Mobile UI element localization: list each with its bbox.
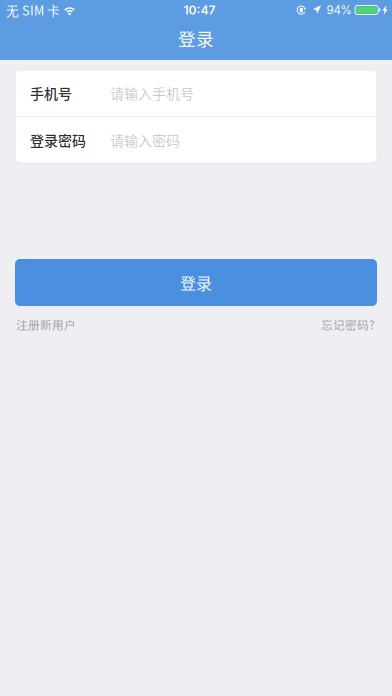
staticText: 忘记密码?	[321, 316, 375, 333]
staticText: 无 SIM 卡	[6, 1, 60, 19]
staticText: 94%	[327, 3, 352, 17]
staticText: 登录密码	[30, 130, 86, 150]
button[interactable]: 手机号	[15, 70, 377, 116]
button[interactable]: 忘记密码?	[321, 316, 375, 333]
button[interactable]: 登录	[15, 259, 377, 306]
staticText: 登录	[180, 271, 212, 294]
staticText: 登录	[178, 25, 214, 51]
staticText: 注册新用户	[16, 316, 76, 333]
staticText: 手机号	[30, 83, 72, 103]
staticText: 请输入密码	[110, 130, 180, 150]
staticText: 10:47	[183, 3, 215, 17]
button[interactable]: 登录密码	[15, 117, 377, 163]
staticText: 请输入手机号	[110, 83, 194, 103]
button[interactable]: 注册新用户	[16, 316, 76, 333]
